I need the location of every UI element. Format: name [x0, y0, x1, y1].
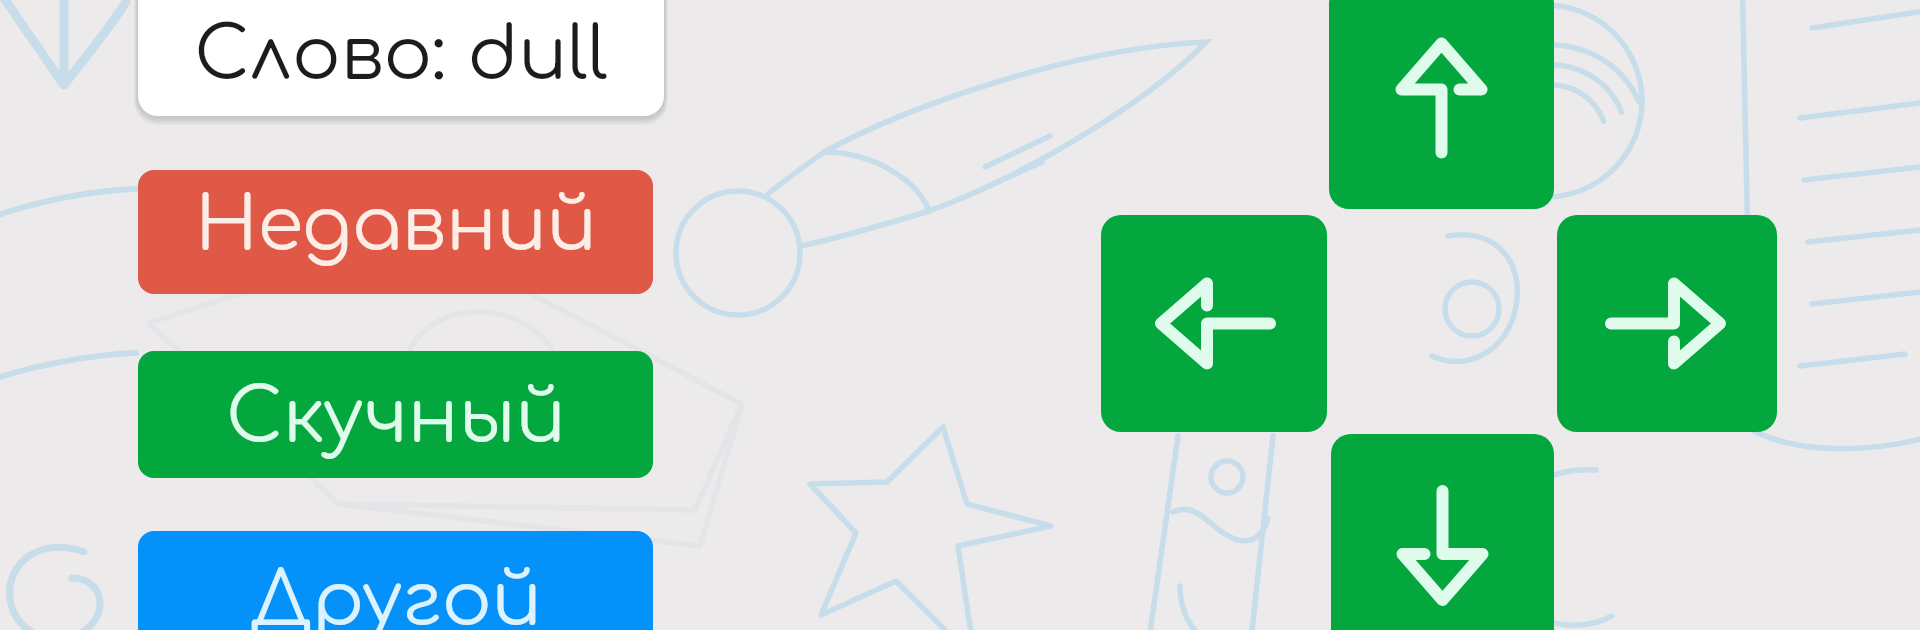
staticText: Скучный — [226, 377, 566, 460]
staticText: Другой — [250, 560, 542, 630]
staticText: Недавний — [195, 185, 597, 268]
staticText: Слово: dull — [194, 16, 608, 96]
button[interactable]: Move left — [1101, 215, 1327, 432]
button[interactable]: Другой — [138, 531, 653, 630]
button[interactable]: Move right — [1557, 215, 1777, 432]
button[interactable]: Move up — [1329, 0, 1554, 209]
button[interactable]: Слово: dull — [138, 0, 664, 116]
button[interactable]: Move down — [1331, 434, 1554, 630]
button[interactable]: Недавний — [138, 170, 653, 294]
button[interactable]: Скучный — [138, 351, 653, 478]
